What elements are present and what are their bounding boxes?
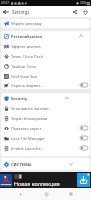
staticText: 20:37 <box>1 1 10 5</box>
button[interactable]: Темы / Icon Pack <box>1 51 90 61</box>
button[interactable]: Install <box>77 173 90 187</box>
button[interactable]: Security <box>1 93 90 103</box>
staticText: Grid View Size <box>11 74 38 79</box>
button[interactable]: Показать скрытые прилож <box>1 123 90 133</box>
button[interactable]: Lock File Manager <box>1 133 90 143</box>
staticText: Эффект иконок <box>11 44 41 49</box>
button[interactable]: Эффект иконок <box>1 41 90 51</box>
button[interactable]: Personalisation <box>1 31 90 41</box>
staticText: Скрыть виджеты поиска <box>11 83 45 88</box>
button[interactable]: Expand <box>64 95 70 101</box>
button[interactable]: Toggle <box>80 83 88 87</box>
button[interactable]: Home <box>40 188 52 200</box>
button[interactable]: Экран блокировки <box>1 113 90 123</box>
button[interactable]: Expand <box>78 33 84 39</box>
staticText: Taskbar Color <box>11 64 37 69</box>
staticText: Settings <box>12 9 30 15</box>
staticText: Новая коллекция <box>14 180 60 187</box>
button[interactable]: Expand <box>68 161 74 167</box>
button[interactable]: Toggle <box>80 146 88 150</box>
button[interactable]: Toggle <box>80 136 88 140</box>
button[interactable]: Grid View Size <box>1 71 90 81</box>
button[interactable]: Убрать рекламу <box>1 19 90 28</box>
staticText: Установить контакт <box>11 106 49 111</box>
staticText: Темы / Icon Pack <box>11 54 43 59</box>
staticText: Убрать рекламу <box>11 21 42 26</box>
button[interactable]: Favorite <box>80 7 90 17</box>
button[interactable]: СИСТЕМЫ <box>1 158 90 170</box>
button[interactable]: Установить контакт <box>1 103 90 113</box>
button[interactable]: Share <box>70 7 80 17</box>
staticText: Security <box>11 96 28 101</box>
staticText: Lock File Manager <box>11 136 45 141</box>
button[interactable]: Enable Launcher Lock <box>1 143 90 153</box>
button[interactable]: Скрыть виджеты поиска <box>1 81 90 89</box>
button[interactable]: Back <box>1 7 11 17</box>
button[interactable]: Back <box>14 188 26 200</box>
staticText: Экран блокировки <box>11 116 48 121</box>
button[interactable]: Toggle <box>80 126 88 130</box>
button[interactable]: Recent apps <box>65 188 77 200</box>
staticText: Enable Launcher Lock <box>11 146 45 151</box>
staticText: СИСТЕМЫ <box>11 162 32 167</box>
staticText: Показать скрытые прилож <box>11 126 45 131</box>
button[interactable]: Taskbar Color <box>1 61 90 71</box>
staticText: 32% <box>80 1 86 5</box>
staticText: Personalisation <box>11 34 42 39</box>
